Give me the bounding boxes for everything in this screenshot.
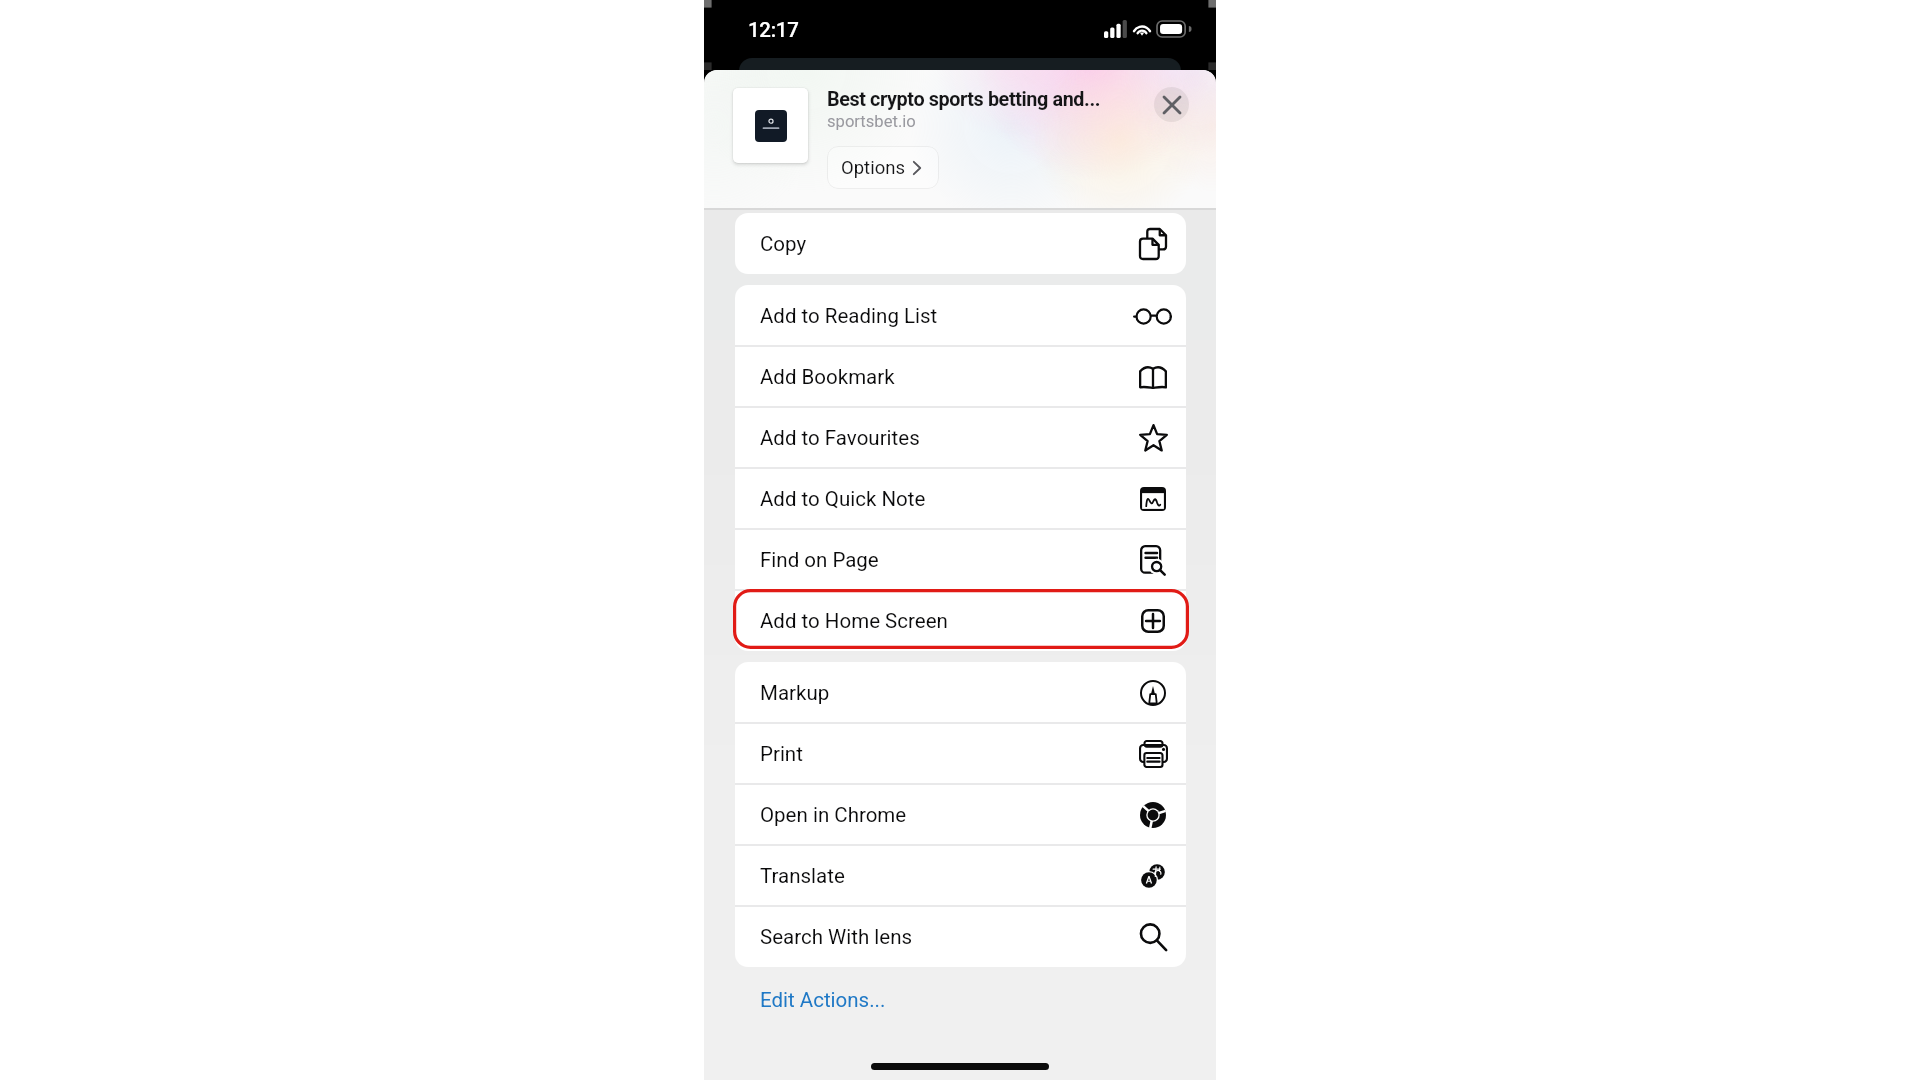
button[interactable]: Add to Quick Note bbox=[735, 468, 1186, 529]
staticText: Copy bbox=[760, 232, 807, 256]
staticText: Translate bbox=[760, 864, 845, 888]
staticText: Add to Home Screen bbox=[760, 609, 948, 633]
button[interactable]: Copy bbox=[735, 213, 1186, 274]
button[interactable]: Markup bbox=[735, 662, 1186, 723]
button[interactable]: Translate bbox=[735, 845, 1186, 906]
staticText: Add to Reading List bbox=[760, 304, 938, 328]
button[interactable]: Search With lens bbox=[735, 906, 1186, 967]
staticText: Markup bbox=[760, 681, 830, 705]
button[interactable]: Add to Favourites bbox=[735, 407, 1186, 468]
button[interactable]: Find on Page bbox=[735, 529, 1186, 590]
button[interactable]: Options bbox=[827, 146, 939, 189]
button[interactable]: Close bbox=[1154, 87, 1189, 122]
staticText: Add to Quick Note bbox=[760, 487, 926, 511]
staticText: Add to Favourites bbox=[760, 426, 920, 450]
staticText: Best crypto sports betting and... bbox=[827, 88, 1101, 111]
button[interactable]: Edit Actions... bbox=[756, 986, 890, 1014]
button[interactable]: Print bbox=[735, 723, 1186, 784]
button[interactable]: Open in Chrome bbox=[735, 784, 1186, 845]
staticText: Edit Actions... bbox=[760, 988, 886, 1012]
staticText: 12:17 bbox=[748, 18, 799, 42]
staticText: Print bbox=[760, 742, 803, 766]
staticText: Options bbox=[841, 157, 905, 179]
staticText: Add Bookmark bbox=[760, 365, 895, 389]
staticText: Open in Chrome bbox=[760, 803, 907, 827]
staticText: sportsbet.io bbox=[827, 112, 916, 131]
button[interactable]: Add to Home Screen bbox=[735, 590, 1186, 651]
staticText: Search With lens bbox=[760, 925, 913, 949]
button[interactable]: Add to Reading List bbox=[735, 285, 1186, 346]
button[interactable]: Add Bookmark bbox=[735, 346, 1186, 407]
staticText: Find on Page bbox=[760, 548, 879, 572]
